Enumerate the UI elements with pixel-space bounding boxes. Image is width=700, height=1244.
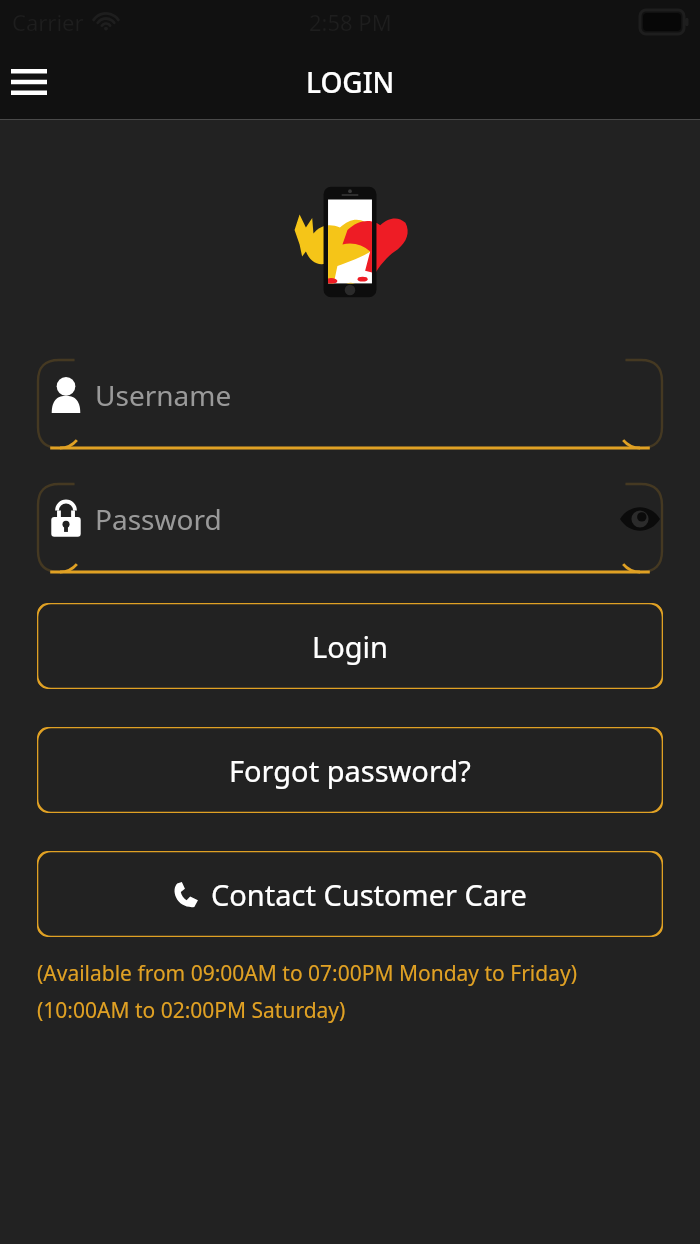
staticText: Password	[95, 500, 222, 538]
button[interactable]: Open navigation menu	[10, 63, 48, 101]
button[interactable]: Password	[37, 483, 663, 573]
button[interactable]: Login	[37, 603, 663, 689]
button[interactable]: Contact Customer Care	[37, 851, 663, 937]
staticText: Contact Customer Care	[211, 875, 527, 914]
staticText: LOGIN	[306, 63, 395, 101]
button[interactable]: Show password	[617, 496, 663, 542]
staticText: Username	[95, 376, 232, 414]
staticText: (Available from 09:00AM to 07:00PM Monda…	[37, 959, 640, 1024]
staticText: Login	[312, 627, 388, 666]
staticText: 2:58 PM	[309, 7, 392, 37]
staticText: Forgot password?	[229, 751, 471, 790]
button[interactable]: Forgot password?	[37, 727, 663, 813]
staticText: Carrier	[12, 7, 84, 37]
button[interactable]: Username	[37, 359, 663, 449]
